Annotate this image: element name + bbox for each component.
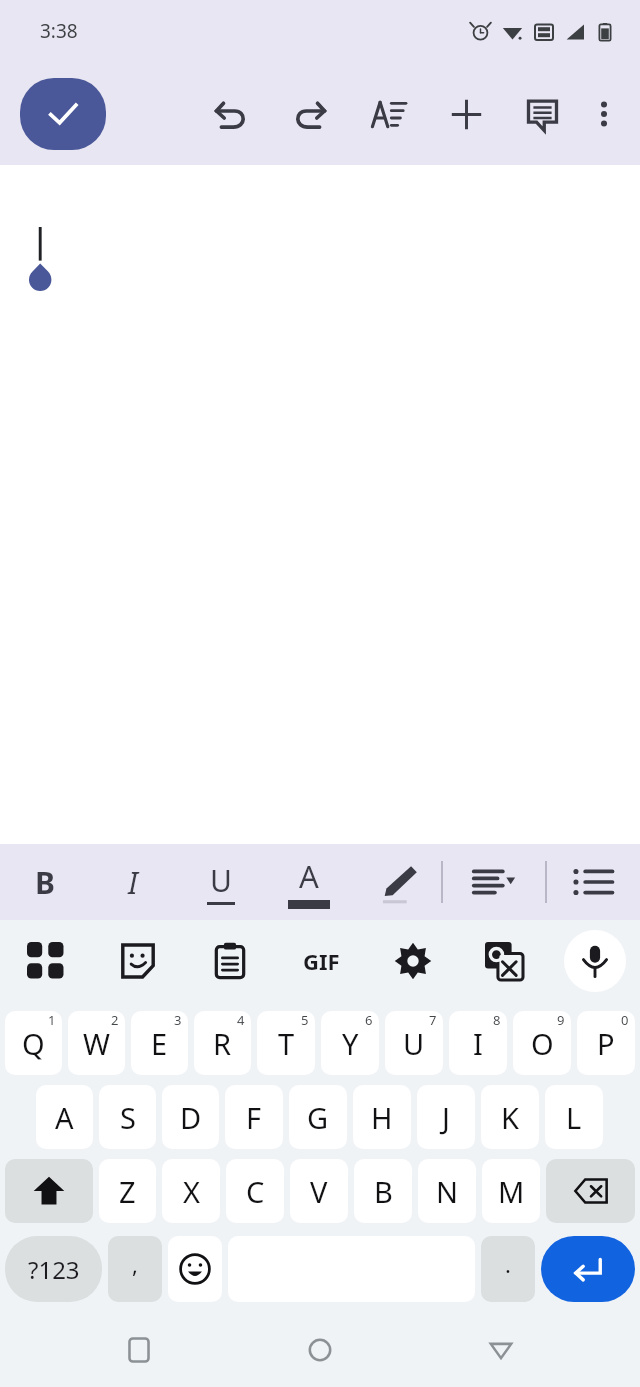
button[interactable]: Emoji bbox=[168, 1236, 222, 1302]
button[interactable]: Apps bbox=[0, 920, 92, 1002]
staticText: H bbox=[371, 1098, 393, 1137]
staticText: W bbox=[83, 1024, 110, 1063]
button[interactable]: 2 bbox=[68, 1011, 125, 1075]
staticText: I bbox=[473, 1024, 483, 1063]
staticText: 4 bbox=[237, 1011, 245, 1029]
staticText: P bbox=[597, 1024, 615, 1063]
button[interactable]: 8 bbox=[449, 1011, 507, 1075]
staticText: O bbox=[531, 1024, 554, 1063]
staticText: A bbox=[299, 855, 319, 897]
button[interactable]: Stickers bbox=[92, 920, 184, 1002]
button[interactable]: Settings bbox=[367, 920, 458, 1002]
button[interactable]: 4 bbox=[194, 1011, 251, 1075]
button[interactable]: G bbox=[289, 1085, 347, 1149]
button[interactable]: X bbox=[162, 1159, 220, 1223]
button[interactable]: F bbox=[225, 1085, 283, 1149]
staticText: 8 bbox=[493, 1011, 501, 1029]
staticText: Y bbox=[342, 1024, 359, 1063]
staticText: 2 bbox=[111, 1011, 119, 1029]
button[interactable]: N bbox=[418, 1159, 476, 1223]
button[interactable]: D bbox=[162, 1085, 219, 1149]
button[interactable]: 7 bbox=[385, 1011, 443, 1075]
button[interactable]: Align bbox=[443, 844, 545, 920]
staticText: J bbox=[442, 1098, 450, 1137]
button[interactable]: B bbox=[0, 844, 89, 920]
button[interactable]: . bbox=[481, 1236, 535, 1302]
staticText: , bbox=[132, 1249, 138, 1279]
staticText: S bbox=[120, 1098, 136, 1137]
button[interactable]: L bbox=[545, 1085, 603, 1149]
staticText: A bbox=[55, 1098, 74, 1137]
button[interactable]: Insert bbox=[438, 86, 494, 142]
button[interactable]: Translate bbox=[458, 920, 549, 1002]
staticText: K bbox=[501, 1098, 519, 1137]
button[interactable]: Text formatting bbox=[360, 86, 416, 142]
button[interactable]: Text colour bbox=[265, 844, 353, 920]
button[interactable]: 1 bbox=[5, 1011, 62, 1075]
button[interactable]: Clipboard bbox=[184, 920, 276, 1002]
staticText: L bbox=[566, 1098, 582, 1137]
staticText: ?123 bbox=[28, 1253, 80, 1286]
button[interactable]: J bbox=[417, 1085, 475, 1149]
staticText: . bbox=[505, 1249, 511, 1279]
staticText: B bbox=[35, 862, 55, 903]
staticText: GIF bbox=[303, 946, 340, 976]
staticText: 0 bbox=[621, 1011, 629, 1029]
staticText: 9 bbox=[557, 1011, 565, 1029]
button[interactable]: GIF bbox=[276, 920, 367, 1002]
button[interactable]: ?123 bbox=[5, 1236, 102, 1302]
staticText: 3:38 bbox=[40, 18, 78, 44]
staticText: U bbox=[403, 1024, 425, 1063]
button[interactable]: Enter bbox=[541, 1236, 635, 1302]
button[interactable]: I bbox=[89, 844, 177, 920]
button[interactable]: Shift bbox=[5, 1159, 93, 1223]
button[interactable]: C bbox=[226, 1159, 284, 1223]
button[interactable]: V bbox=[290, 1159, 348, 1223]
button[interactable]: M bbox=[482, 1159, 540, 1223]
button[interactable]: Redo bbox=[282, 86, 338, 142]
staticText: X bbox=[183, 1172, 200, 1211]
staticText: F bbox=[246, 1098, 262, 1137]
staticText: 5 bbox=[301, 1011, 309, 1029]
staticText: G bbox=[307, 1098, 329, 1137]
button[interactable]: Highlight bbox=[353, 844, 441, 920]
staticText: I bbox=[128, 862, 138, 903]
button[interactable]: More options bbox=[580, 90, 628, 138]
staticText: M bbox=[498, 1172, 525, 1211]
button[interactable]: Done bbox=[20, 78, 106, 150]
button[interactable]: U bbox=[177, 844, 265, 920]
button[interactable]: B bbox=[354, 1159, 412, 1223]
staticText: C bbox=[246, 1172, 265, 1211]
staticText: E bbox=[151, 1024, 168, 1063]
button[interactable]: Recents bbox=[110, 1321, 168, 1379]
button[interactable]: H bbox=[353, 1085, 411, 1149]
staticText: R bbox=[213, 1024, 232, 1063]
button[interactable]: A bbox=[36, 1085, 93, 1149]
staticText: Z bbox=[119, 1172, 136, 1211]
button[interactable]: K bbox=[481, 1085, 539, 1149]
button[interactable]: Comments bbox=[514, 86, 570, 142]
button[interactable]: S bbox=[99, 1085, 156, 1149]
button[interactable]: Backspace bbox=[546, 1159, 635, 1223]
staticText: 3 bbox=[174, 1011, 182, 1029]
button[interactable]: 9 bbox=[513, 1011, 571, 1075]
staticText: 1 bbox=[48, 1011, 56, 1029]
button[interactable]: , bbox=[108, 1236, 162, 1302]
button[interactable]: Back bbox=[472, 1321, 530, 1379]
staticText: T bbox=[278, 1024, 295, 1063]
button[interactable]: 0 bbox=[577, 1011, 635, 1075]
button[interactable]: Undo bbox=[202, 86, 258, 142]
button[interactable]: 6 bbox=[321, 1011, 379, 1075]
button[interactable]: 3 bbox=[131, 1011, 188, 1075]
button[interactable]: 5 bbox=[257, 1011, 315, 1075]
button[interactable]: Voice input bbox=[564, 930, 626, 992]
button[interactable]: List bbox=[547, 844, 640, 920]
staticText: N bbox=[436, 1172, 459, 1211]
staticText: 6 bbox=[365, 1011, 373, 1029]
button[interactable]: Z bbox=[99, 1159, 156, 1223]
staticText: Q bbox=[22, 1024, 45, 1063]
button[interactable]: Home bbox=[291, 1321, 349, 1379]
staticText: D bbox=[180, 1098, 202, 1137]
staticText: U bbox=[210, 860, 232, 901]
